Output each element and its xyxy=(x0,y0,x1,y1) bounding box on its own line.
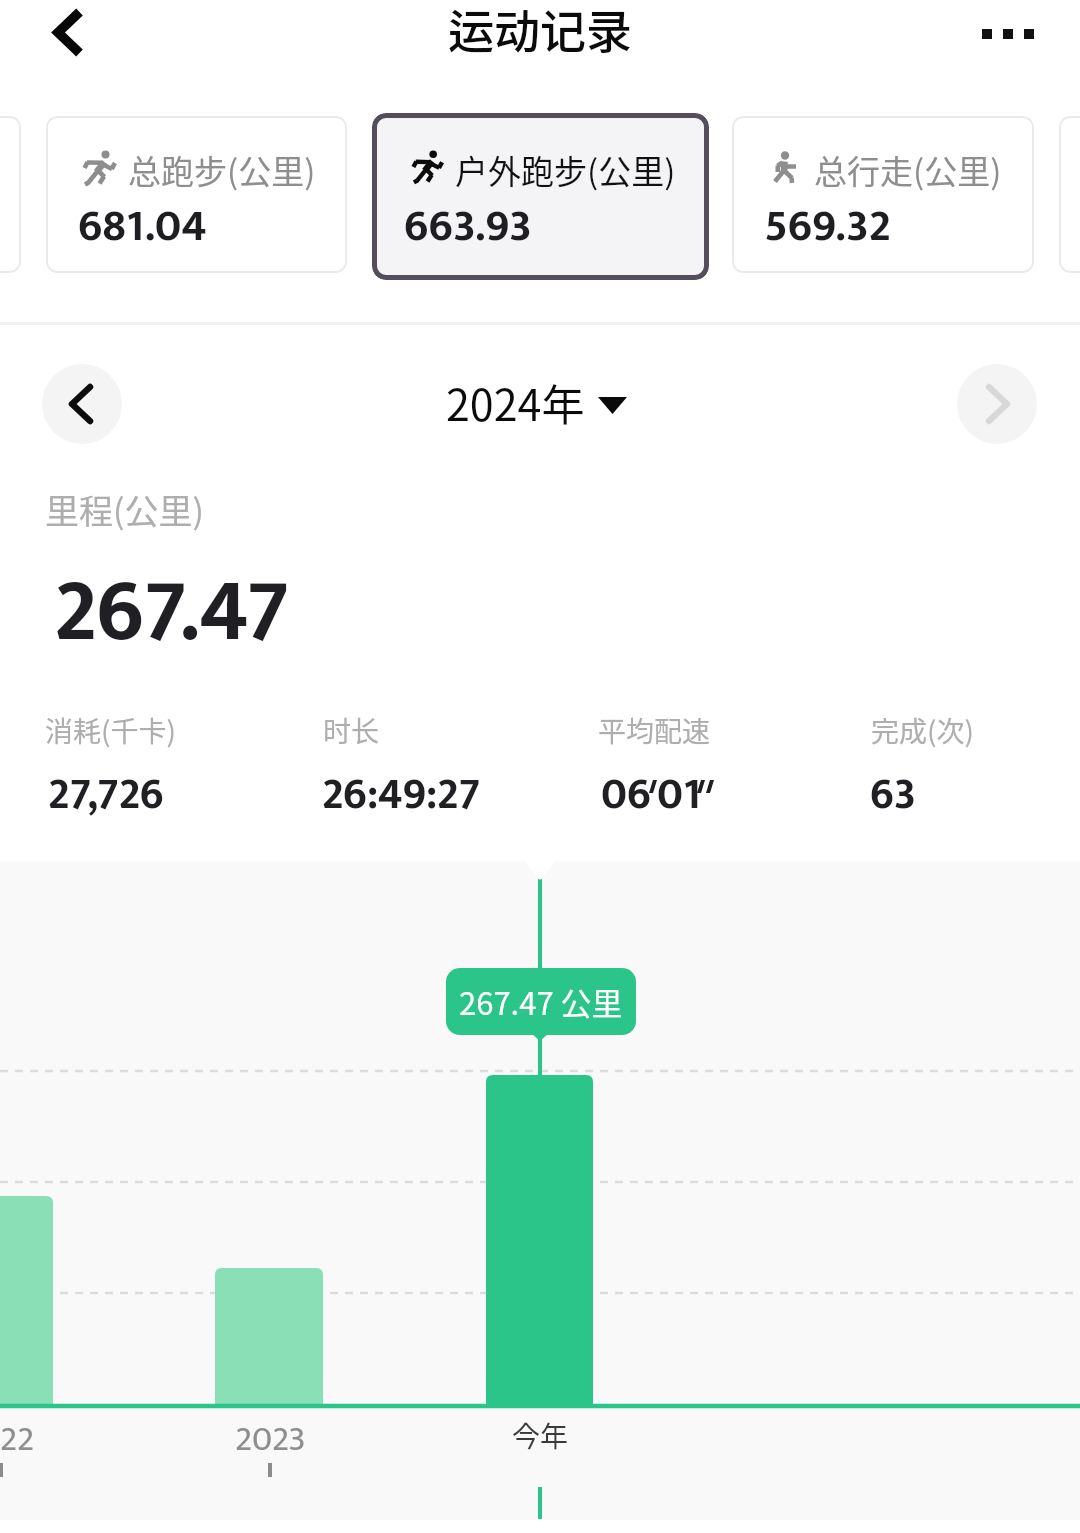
staticText: 户外跑步(公里) xyxy=(455,146,676,194)
button[interactable]: Next year xyxy=(957,364,1037,444)
staticText: 63 xyxy=(870,758,917,831)
button[interactable]: 总跑步(公里) xyxy=(46,116,347,273)
staticText: 消耗(千卡) xyxy=(45,710,176,751)
staticText: 681.04 xyxy=(78,189,207,264)
staticText: 2024年 xyxy=(446,371,585,433)
button[interactable]: More options xyxy=(958,0,1058,68)
button[interactable] xyxy=(1059,116,1080,273)
staticText: 平均配速 xyxy=(598,710,711,751)
staticText: 总行走(公里) xyxy=(814,146,1002,194)
staticText: 时长 xyxy=(323,710,380,751)
staticText: 今年 xyxy=(512,1415,569,1456)
staticText: 06 xyxy=(601,758,651,831)
button[interactable]: Back xyxy=(22,0,114,68)
staticText: 2022 xyxy=(0,1410,34,1468)
staticText: 26:49:27 xyxy=(322,758,481,831)
staticText: 267.47 xyxy=(54,540,290,686)
staticText: 27,726 xyxy=(48,758,164,831)
staticText: 267.47 公里 xyxy=(459,979,623,1024)
button[interactable]: 267.47 公里 xyxy=(446,968,636,1035)
staticText: 663.93 xyxy=(404,189,532,264)
staticText: 01 xyxy=(657,758,701,831)
button[interactable] xyxy=(0,116,21,273)
button[interactable]: 户外跑步(公里) xyxy=(372,113,709,280)
button[interactable]: Previous year xyxy=(42,364,122,444)
staticText: 569.32 xyxy=(764,189,891,264)
staticText: 2023 xyxy=(235,1410,306,1468)
staticText: 完成(次) xyxy=(871,710,974,751)
staticText: 总跑步(公里) xyxy=(128,146,316,194)
staticText: 里程(公里) xyxy=(45,485,204,534)
button[interactable]: 总行走(公里) xyxy=(732,116,1034,273)
staticText: 运动记录 xyxy=(448,0,632,62)
